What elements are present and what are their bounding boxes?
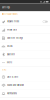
button[interactable]: Sound and vibration <box>0 81 50 89</box>
staticText: Settings <box>2 6 10 9</box>
staticText: Bluetooth <box>7 53 15 56</box>
staticText: Date & time <box>7 76 18 78</box>
button[interactable]: Airplane mode <box>0 18 50 26</box>
staticText: DEVICE <box>2 69 7 71</box>
staticText: Notifications <box>7 92 17 95</box>
staticText: Sound and vibration <box>7 84 24 86</box>
button[interactable]: Mobile data <box>0 26 50 34</box>
staticText: Airplane mode <box>7 20 19 23</box>
button[interactable]: Date & time <box>0 73 50 81</box>
button[interactable]: Bluetooth <box>0 50 50 59</box>
button[interactable]: WLAN <box>0 42 50 50</box>
button[interactable]: More <box>0 59 50 67</box>
staticText: Dual SIM settings <box>7 37 23 39</box>
staticText: WLAN <box>7 45 12 47</box>
button[interactable]: Dual SIM settings <box>0 34 50 42</box>
staticText: More <box>7 61 12 64</box>
staticText: WIRELESS & NETWORKS <box>2 14 18 15</box>
button[interactable]: Notifications <box>0 89 50 98</box>
staticText: Mobile data <box>7 29 17 31</box>
